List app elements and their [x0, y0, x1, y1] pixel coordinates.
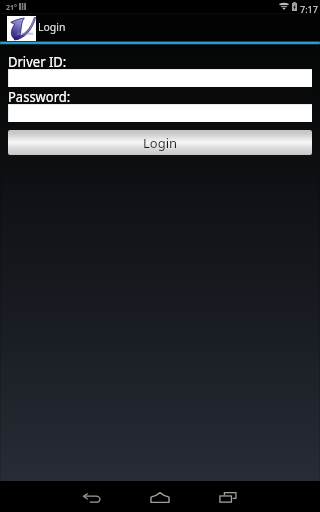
button[interactable] — [8, 69, 312, 87]
button[interactable]: Recent apps — [194, 481, 262, 512]
button[interactable]: Back — [58, 481, 126, 512]
button[interactable]: Login — [8, 130, 312, 155]
staticText: Driver ID: — [8, 51, 67, 71]
staticText: 7:17 — [300, 3, 318, 15]
button[interactable] — [8, 104, 312, 122]
button[interactable]: Home — [126, 481, 194, 512]
staticText: 21° — [6, 3, 17, 13]
staticText: Login — [143, 134, 178, 152]
staticText: Password: — [8, 86, 71, 106]
staticText: Login — [38, 20, 66, 34]
